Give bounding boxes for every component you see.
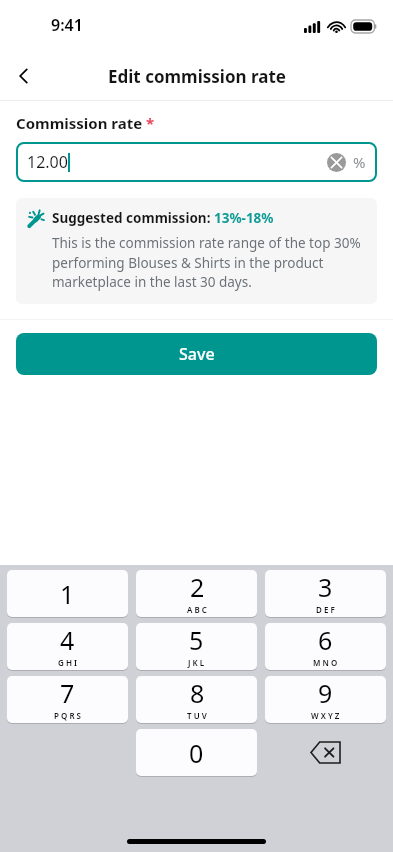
- staticText: 8: [190, 676, 205, 710]
- button[interactable]: 9: [265, 676, 386, 723]
- button[interactable]: 2: [136, 570, 257, 617]
- staticText: D E F: [316, 604, 335, 615]
- staticText: Commission rate *: [16, 113, 155, 133]
- staticText: M N O: [313, 657, 338, 668]
- staticText: 2: [190, 570, 205, 604]
- button[interactable]: 12.00: [16, 142, 377, 182]
- staticText: 7: [60, 676, 75, 710]
- staticText: W X Y Z: [311, 710, 340, 721]
- staticText: G H I: [58, 657, 77, 668]
- button[interactable]: Back: [0, 52, 48, 100]
- staticText: 9:41: [51, 14, 83, 36]
- button[interactable]: 4: [7, 623, 128, 670]
- staticText: P Q R S: [54, 710, 81, 721]
- button[interactable]: 8: [136, 676, 257, 723]
- staticText: %: [353, 152, 366, 172]
- button[interactable]: 5: [136, 623, 257, 670]
- staticText: 12.00: [27, 151, 68, 173]
- staticText: 5: [189, 623, 204, 657]
- staticText: 0: [189, 736, 204, 770]
- button[interactable]: 7: [7, 676, 128, 723]
- button[interactable]: 6: [265, 623, 386, 670]
- staticText: 9: [318, 676, 333, 710]
- staticText: J K L: [188, 657, 205, 668]
- staticText: 6: [318, 623, 333, 657]
- staticText: Edit commission rate: [108, 65, 286, 88]
- staticText: 1: [60, 577, 75, 611]
- button[interactable]: 1: [7, 570, 128, 617]
- staticText: T U V: [187, 710, 207, 721]
- button[interactable]: Clear: [327, 153, 346, 172]
- button[interactable]: Save: [16, 333, 377, 375]
- button[interactable]: 3: [265, 570, 386, 617]
- staticText: Suggested commission: 13%-18%: [52, 209, 274, 227]
- staticText: 3: [318, 570, 333, 604]
- staticText: This is the commission rate range of the…: [52, 234, 365, 291]
- staticText: Save: [179, 343, 215, 365]
- button[interactable]: 0: [136, 729, 257, 776]
- button[interactable]: Delete: [265, 729, 386, 776]
- staticText: A B C: [187, 604, 207, 615]
- staticText: 4: [60, 623, 75, 657]
